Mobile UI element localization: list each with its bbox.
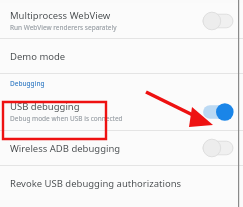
button[interactable]: USB debugging on [201,101,235,123]
button[interactable]: Demo mode [0,39,243,73]
button[interactable]: Multiprocess WebView [0,3,243,38]
staticText: USB debugging [10,100,80,113]
button[interactable]: Revoke USB debugging authorizations [0,166,243,200]
staticText: Demo mode [10,50,66,63]
button[interactable]: Wireless ADB debugging off [201,137,235,159]
staticText: Debug mode when USB is connected [10,114,123,123]
staticText: Wireless ADB debugging [10,142,121,155]
button[interactable]: Wireless ADB debugging [0,131,243,165]
staticText: Multiprocess WebView [10,9,111,22]
staticText: Run WebView renderers separately [10,23,117,32]
staticText: Debugging [10,79,45,88]
button[interactable]: USB debugging [0,93,243,130]
button[interactable]: Multiprocess WebView off [201,10,235,32]
staticText: Revoke USB debugging authorizations [10,177,182,190]
